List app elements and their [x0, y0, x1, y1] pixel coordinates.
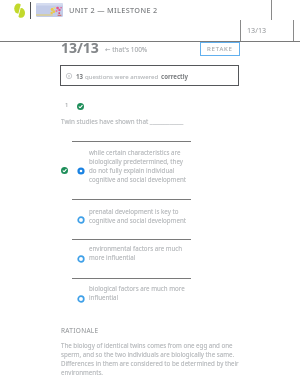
staticText: while certain characteristics are biolog…: [89, 148, 186, 184]
staticText: Twin studies have shown that ___________…: [61, 117, 184, 126]
staticText: correctly: [161, 72, 189, 80]
staticText: 13/13: [247, 25, 267, 35]
staticText: questions were answered: [85, 72, 159, 80]
staticText: prenatal development is key to cognitive…: [89, 207, 186, 225]
staticText: environmental factors are much more infl…: [89, 244, 183, 262]
staticText: RATIONALE: [61, 326, 99, 335]
button[interactable]: Answer option: [77, 255, 85, 263]
button[interactable]: Answer option: [77, 216, 85, 224]
staticText: UNIT 2 — MILESTONE 2: [69, 5, 158, 15]
button[interactable]: Selected answer: [77, 167, 85, 175]
staticText: RETAKE: [207, 45, 233, 53]
staticText: 13: [76, 72, 83, 80]
staticText: ← that's 100%: [105, 45, 148, 54]
staticText: The biology of identical twins comes fro…: [61, 341, 239, 377]
button[interactable]: RETAKE: [200, 42, 240, 56]
button[interactable]: Answer option: [77, 295, 85, 303]
staticText: 13/13: [61, 38, 99, 57]
staticText: biological factors are much more influen…: [89, 284, 185, 302]
staticText: 1: [65, 101, 69, 109]
